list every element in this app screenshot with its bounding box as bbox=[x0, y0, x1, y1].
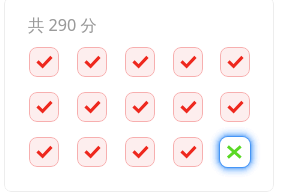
button[interactable]: Correct answer bbox=[125, 92, 155, 122]
button[interactable]: Correct answer bbox=[125, 47, 155, 77]
button[interactable]: Correct answer bbox=[29, 137, 59, 167]
button[interactable]: Correct answer bbox=[29, 92, 59, 122]
button[interactable]: Correct answer bbox=[173, 47, 203, 77]
button[interactable]: Correct answer bbox=[220, 47, 250, 77]
button[interactable]: Correct answer bbox=[77, 47, 107, 77]
button[interactable]: Correct answer bbox=[173, 92, 203, 122]
staticText: 共 290 分 bbox=[28, 14, 97, 36]
button[interactable]: Correct answer bbox=[173, 137, 203, 167]
button[interactable]: Correct answer bbox=[77, 92, 107, 122]
button[interactable]: Correct answer bbox=[29, 47, 59, 77]
button[interactable]: Correct answer bbox=[125, 137, 155, 167]
button[interactable]: Correct answer bbox=[77, 137, 107, 167]
button[interactable]: Correct answer bbox=[220, 92, 250, 122]
button[interactable]: Wrong answer, selected bbox=[220, 137, 250, 167]
